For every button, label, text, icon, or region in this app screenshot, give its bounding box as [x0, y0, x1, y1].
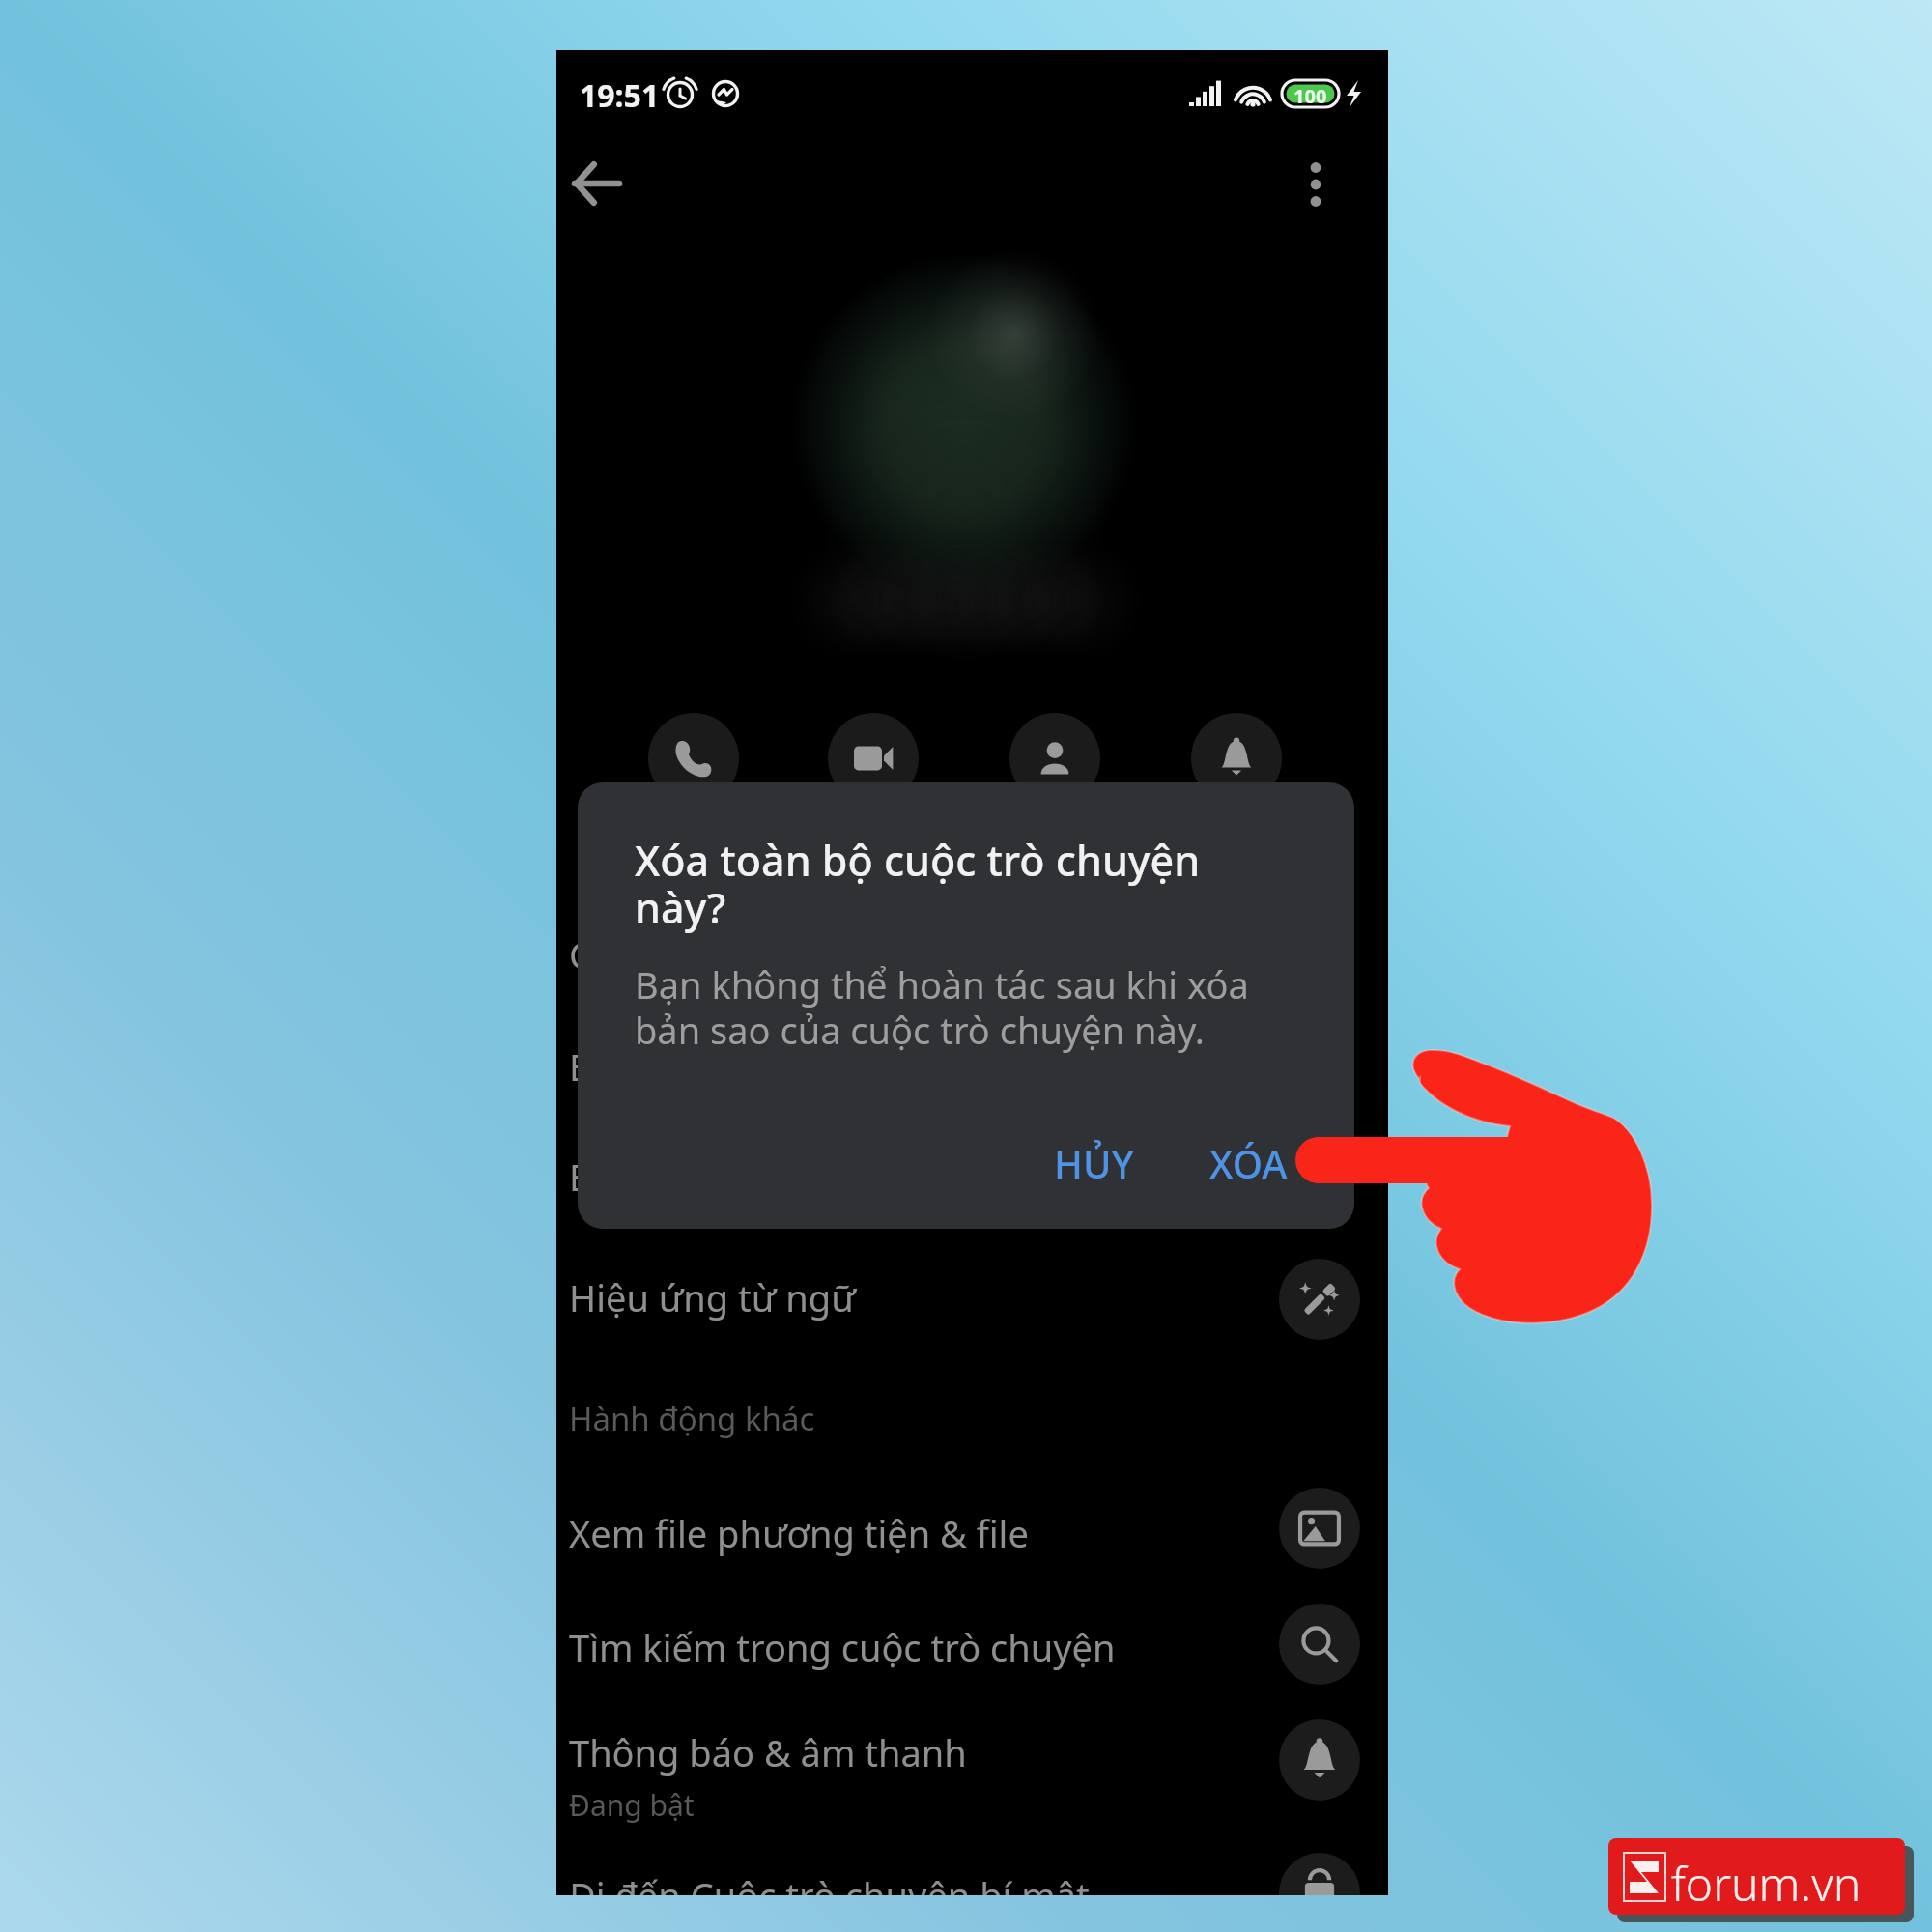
button[interactable]: Hiệu ứng từ ngữ — [556, 1238, 1388, 1354]
staticText: Xem file phương tiện & file — [569, 1508, 1029, 1558]
staticText: Bạn không thể hoàn tác sau khi xóa — [635, 959, 1249, 1009]
staticText: forum.vn — [1671, 1852, 1861, 1915]
staticText: Xóa toàn bộ cuộc trò chuyện — [635, 832, 1201, 889]
button[interactable]: Mute notifications — [1191, 713, 1282, 804]
staticText: XÓA — [1209, 1137, 1288, 1189]
staticText: 19:51 — [580, 74, 660, 117]
staticText: Hiệu ứng từ ngữ — [569, 1272, 856, 1322]
staticText: Tìm kiếm trong cuộc trò chuyện — [569, 1622, 1116, 1672]
staticText: 100 — [1293, 83, 1327, 109]
button[interactable]: Back — [556, 143, 639, 226]
staticText: Thông báo & âm thanh — [569, 1727, 967, 1777]
button[interactable]: HỦY — [1027, 1110, 1156, 1191]
staticText: này? — [635, 879, 726, 936]
staticText: Hành động khác — [569, 1397, 815, 1440]
button[interactable]: Biệt danh — [556, 1009, 1388, 1124]
button[interactable]: Đi đến Cuộc trò chuyện bí mật — [556, 1837, 1388, 1895]
button[interactable]: Audio call — [648, 713, 739, 804]
staticText: Báo cáo — [569, 1151, 706, 1202]
button[interactable]: Tìm kiếm trong cuộc trò chuyện — [556, 1588, 1388, 1704]
button[interactable]: Xem file phương tiện & file — [556, 1474, 1388, 1590]
staticText: HỦY — [1054, 1137, 1134, 1189]
staticText: Biệt danh — [569, 1041, 735, 1092]
button[interactable]: Video call — [828, 713, 919, 804]
button[interactable]: View profile — [1009, 713, 1100, 804]
staticText: Đang bật — [569, 1785, 695, 1825]
button[interactable]: Chặn — [556, 896, 1388, 1012]
button[interactable]: Thông báo & âm thanh — [556, 1694, 1388, 1830]
staticText: Đi đến Cuộc trò chuyện bí mật — [569, 1870, 1090, 1895]
staticText: bản sao của cuộc trò chuyện này. — [635, 1005, 1205, 1055]
button[interactable]: More options — [1275, 143, 1358, 226]
button[interactable]: XÓA — [1182, 1110, 1312, 1191]
staticText: Chặn — [569, 929, 659, 980]
button[interactable]: Báo cáo — [556, 1119, 1388, 1235]
